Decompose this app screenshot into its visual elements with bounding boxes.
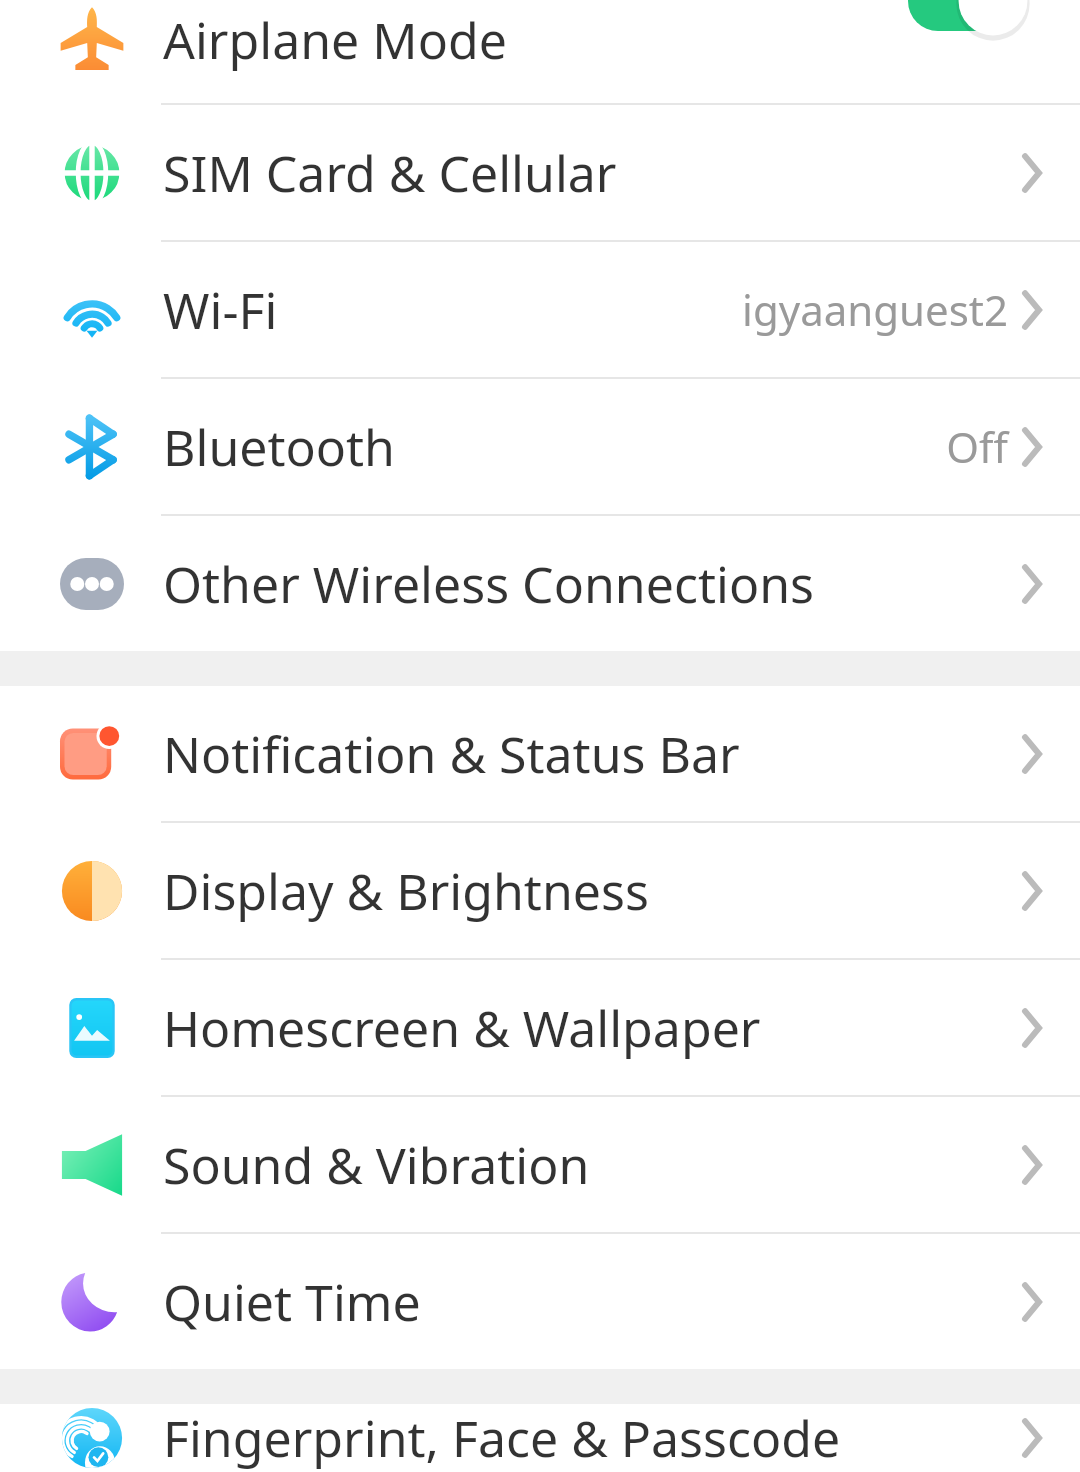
button[interactable]: Airplane Mode bbox=[0, 0, 1080, 103]
staticText: Notification & Status Bar bbox=[163, 720, 740, 788]
staticText: Bluetooth bbox=[163, 413, 395, 481]
staticText: Quiet Time bbox=[163, 1268, 421, 1336]
staticText: SIM Card & Cellular bbox=[163, 139, 617, 207]
button[interactable]: Airplane Mode toggle bbox=[908, 0, 1030, 38]
button[interactable]: Notification & Status Bar bbox=[0, 686, 1080, 821]
button[interactable]: Other Wireless Connections bbox=[0, 516, 1080, 651]
staticText: igyaanguest2 bbox=[742, 281, 1008, 338]
button[interactable]: Wi-Fi bbox=[0, 242, 1080, 377]
staticText: Off bbox=[946, 418, 1008, 475]
button[interactable]: SIM Card & Cellular bbox=[0, 105, 1080, 240]
button[interactable]: Display & Brightness bbox=[0, 823, 1080, 958]
staticText: Other Wireless Connections bbox=[163, 550, 814, 618]
staticText: Fingerprint, Face & Passcode bbox=[163, 1404, 841, 1472]
button[interactable]: Bluetooth bbox=[0, 379, 1080, 514]
staticText: Wi-Fi bbox=[163, 276, 278, 344]
staticText: Airplane Mode bbox=[163, 6, 507, 74]
staticText: Homescreen & Wallpaper bbox=[163, 994, 761, 1062]
button[interactable]: Fingerprint, Face & Passcode bbox=[0, 1404, 1080, 1472]
button[interactable]: Sound & Vibration bbox=[0, 1097, 1080, 1232]
staticText: Sound & Vibration bbox=[163, 1131, 590, 1199]
button[interactable]: Quiet Time bbox=[0, 1234, 1080, 1369]
button[interactable]: Homescreen & Wallpaper bbox=[0, 960, 1080, 1095]
staticText: Display & Brightness bbox=[163, 857, 649, 925]
